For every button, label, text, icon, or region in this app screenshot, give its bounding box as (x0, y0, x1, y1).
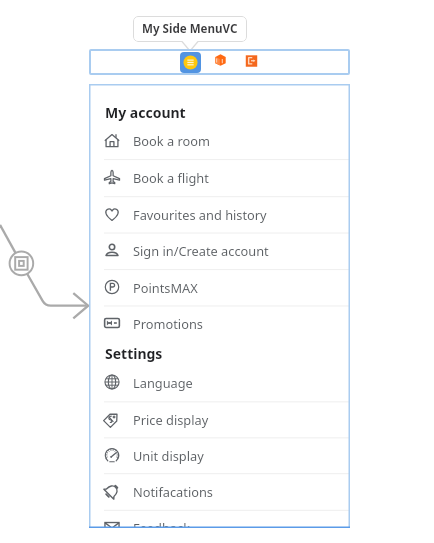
staticText: Language (133, 374, 193, 391)
button[interactable]: Book a flight (89, 159, 350, 195)
staticText: Unit display (133, 447, 204, 464)
staticText: Settings (105, 344, 163, 363)
button[interactable]: View controller (180, 52, 201, 73)
staticText: Feedback (133, 519, 190, 528)
staticText: Price display (133, 411, 209, 428)
button[interactable]: Favourites and history (89, 196, 350, 232)
button[interactable]: Notifacations (89, 473, 350, 509)
staticText: Book a flight (133, 169, 209, 186)
staticText: Favourites and history (133, 206, 267, 223)
staticText: My Side MenuVC (142, 21, 238, 37)
staticText: PointsMAX (133, 279, 198, 296)
staticText: Promotions (133, 315, 203, 332)
staticText: Sign in/Create account (133, 242, 269, 259)
staticText: My account (105, 103, 186, 122)
button[interactable]: Sign in/Create account (89, 232, 350, 268)
staticText: Book a room (133, 132, 210, 149)
button[interactable]: First responder (214, 53, 227, 66)
button[interactable]: Price display (89, 401, 350, 437)
button[interactable]: Promotions (89, 305, 350, 341)
button[interactable]: Exit (245, 54, 258, 67)
staticText: Notifacations (133, 483, 213, 500)
button[interactable]: Unit display (89, 437, 350, 473)
button[interactable]: Feedback (89, 509, 350, 528)
button[interactable]: Language (89, 364, 350, 400)
button[interactable]: PointsMAX (89, 269, 350, 305)
button[interactable]: Book a room (89, 122, 350, 158)
